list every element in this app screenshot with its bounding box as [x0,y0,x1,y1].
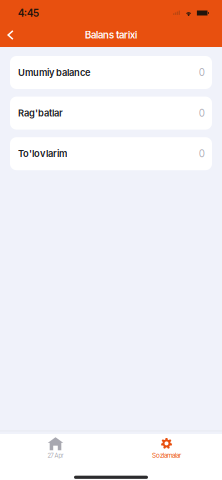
button[interactable]: Rag'batlar [10,97,212,130]
button[interactable]: Sozlamalar [111,431,222,463]
staticText: Umumiy balance [18,67,91,78]
staticText: Balans tarixi [85,29,137,41]
staticText: 4:45 [18,7,39,19]
button[interactable]: Back [0,25,21,45]
button[interactable]: 27 Apr [0,431,111,463]
staticText: To'lovlarim [18,148,67,159]
staticText: Rag'batlar [18,107,63,119]
staticText: 0 [199,107,205,119]
staticText: Sozlamalar [152,451,181,459]
staticText: 0 [199,66,205,78]
button[interactable]: Umumiy balance [10,56,212,89]
button[interactable]: To'lovlarim [10,137,212,170]
staticText: 27 Apr [47,452,63,459]
staticText: 0 [199,148,205,160]
